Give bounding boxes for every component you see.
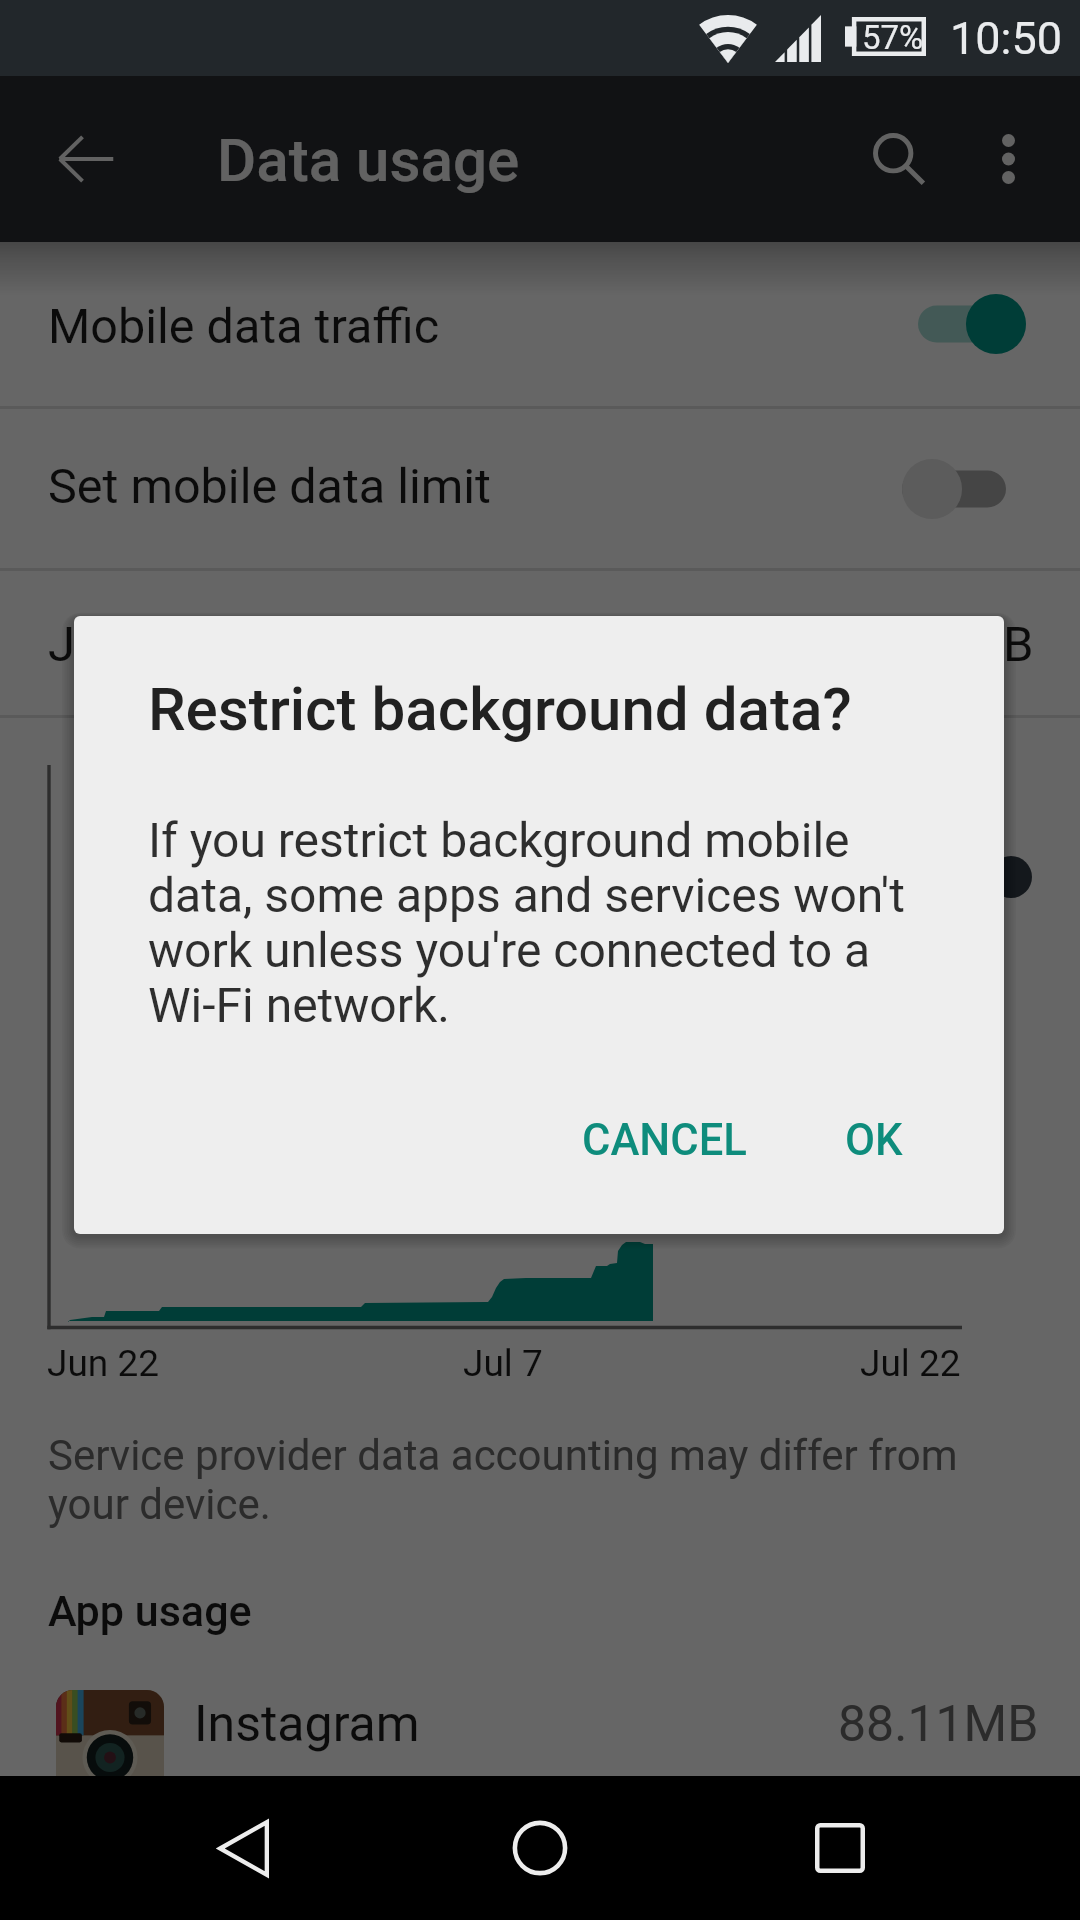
button[interactable]: Instagram xyxy=(0,1668,1080,1818)
staticText: Mobile data traffic xyxy=(48,298,440,355)
staticText: Jun 22 - Jul 22 xyxy=(48,616,368,673)
button[interactable]: OK xyxy=(811,1089,937,1192)
staticText: Restrict background data? xyxy=(148,674,852,744)
button[interactable]: Recent apps xyxy=(780,1788,900,1908)
button[interactable]: Mobile data traffic xyxy=(0,242,1080,406)
staticText: Jun 22 xyxy=(47,1342,160,1385)
button[interactable]: Back xyxy=(183,1788,303,1908)
staticText: 88.11MB xyxy=(838,1695,1039,1754)
staticText: If you restrict background mobile data, … xyxy=(148,812,910,1033)
button[interactable]: CANCEL xyxy=(548,1089,781,1192)
staticText: App usage xyxy=(48,1586,252,1636)
staticText: 1.69GB xyxy=(874,616,1034,673)
staticText: OK xyxy=(845,1115,903,1166)
button[interactable]: Search xyxy=(849,109,949,209)
button[interactable]: More options xyxy=(958,109,1058,209)
staticText: Instagram xyxy=(194,1695,420,1754)
staticText: 57% xyxy=(862,18,924,57)
staticText: Data usage xyxy=(217,125,520,195)
staticText: Set mobile data limit xyxy=(48,458,491,515)
staticText: Service provider data accounting may dif… xyxy=(48,1431,1008,1529)
staticText: 10:50 xyxy=(950,12,1063,65)
staticText: Jul 7 xyxy=(463,1342,543,1385)
staticText: Jul 22 xyxy=(860,1342,961,1385)
button[interactable]: Navigate up xyxy=(36,109,136,209)
staticText: CANCEL xyxy=(582,1115,747,1166)
button[interactable]: Home xyxy=(480,1788,600,1908)
button[interactable]: Set mobile data limit xyxy=(0,409,1080,568)
